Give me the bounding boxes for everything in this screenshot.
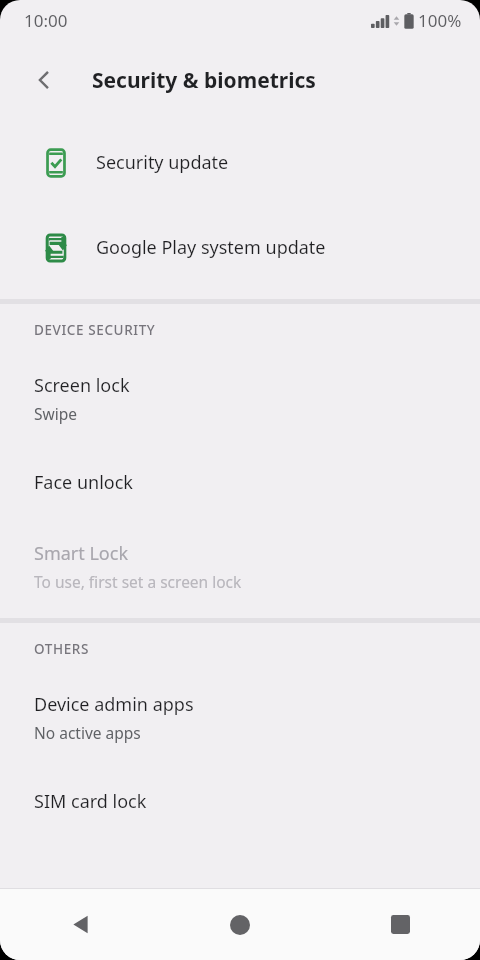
staticText: Google Play system update	[96, 235, 326, 260]
button[interactable]: Device admin apps	[0, 675, 480, 759]
staticText: No active apps	[34, 722, 141, 743]
button[interactable]: Screen lock	[0, 356, 480, 440]
button[interactable]: Face unlock	[0, 440, 480, 524]
staticText: Swipe	[34, 403, 77, 424]
staticText: 100%	[418, 9, 462, 32]
staticText: Screen lock	[34, 373, 130, 398]
staticText: Smart Lock	[34, 541, 128, 566]
staticText: Security update	[96, 150, 229, 175]
button[interactable]: Back	[0, 889, 160, 960]
staticText: Device admin apps	[34, 692, 194, 717]
staticText: Security & biometrics	[92, 66, 316, 95]
staticText: DEVICE SECURITY	[34, 321, 156, 339]
button[interactable]: Back	[20, 56, 68, 104]
staticText: To use, first set a screen lock	[34, 571, 242, 592]
button[interactable]: Security update	[0, 120, 480, 205]
staticText: SIM card lock	[34, 789, 147, 814]
button[interactable]: SIM card lock	[0, 759, 480, 843]
staticText: OTHERS	[34, 640, 89, 658]
staticText: 10:00	[24, 9, 68, 32]
button[interactable]: Smart Lock	[0, 524, 480, 608]
button[interactable]: Home	[160, 889, 320, 960]
staticText: Face unlock	[34, 470, 133, 495]
button[interactable]: Recent apps	[320, 889, 480, 960]
button[interactable]: Google Play system update	[0, 205, 480, 290]
